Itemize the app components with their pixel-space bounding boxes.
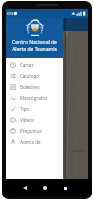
- button[interactable]: Mareógrafos: [6, 92, 63, 103]
- button[interactable]: Boletines: [6, 81, 63, 92]
- button[interactable]: Cartas: [6, 59, 63, 70]
- button[interactable]: Recents: [59, 182, 71, 194]
- button[interactable]: Videos: [6, 114, 63, 125]
- button[interactable]: Catálogo: [6, 70, 63, 81]
- button[interactable]: Tips: [6, 103, 63, 114]
- staticText: Catálogo: [20, 73, 39, 79]
- staticText: Preguntas: [20, 128, 42, 134]
- staticText: Cartas: [20, 62, 34, 68]
- staticText: Videos: [20, 117, 35, 123]
- staticText: Alerta de Tsunamis: [12, 46, 57, 53]
- staticText: Tips: [20, 106, 29, 112]
- staticText: Boletines: [20, 84, 40, 90]
- button[interactable]: Acerca de: [6, 136, 63, 147]
- staticText: Centro Nacional de: [12, 39, 57, 46]
- button[interactable]: Back: [19, 182, 31, 194]
- button[interactable]: Preguntas: [6, 125, 63, 136]
- staticText: Acerca de: [20, 139, 41, 145]
- staticText: Mareógrafos: [20, 95, 48, 101]
- button[interactable]: Home: [39, 182, 51, 194]
